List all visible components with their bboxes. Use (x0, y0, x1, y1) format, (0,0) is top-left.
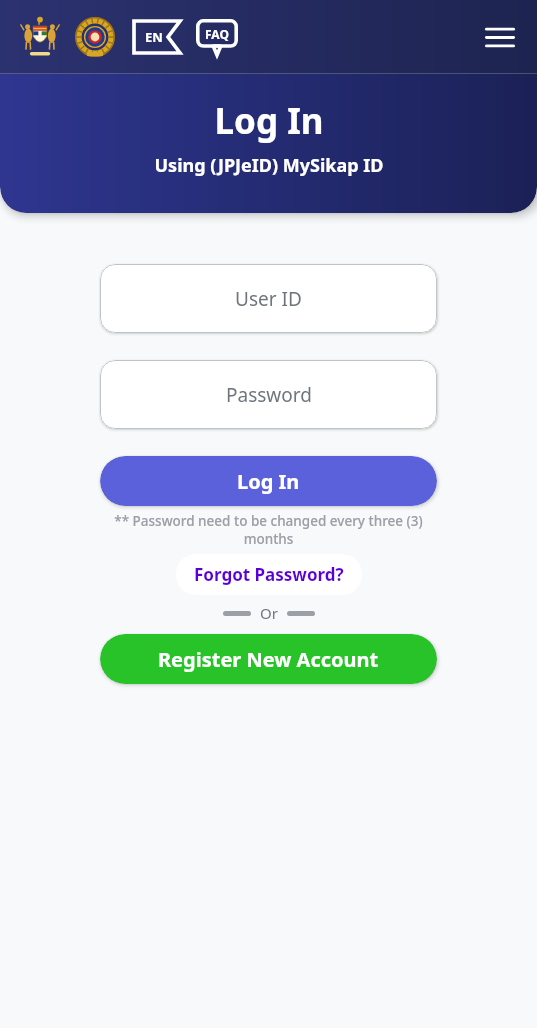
staticText: Password (226, 382, 312, 408)
staticText: User ID (235, 286, 302, 312)
staticText: FAQ (205, 26, 229, 42)
button[interactable]: Register New Account (100, 634, 437, 684)
staticText: EN (145, 28, 163, 46)
button[interactable]: FAQ (193, 16, 241, 58)
staticText: Register New Account (158, 646, 379, 673)
button[interactable]: Forgot Password? (176, 554, 362, 595)
button[interactable]: Password (100, 360, 437, 429)
button[interactable]: Menu (477, 14, 523, 60)
button[interactable]: Jata Negara (16, 14, 64, 60)
staticText: Log In (214, 97, 324, 145)
button[interactable]: Language EN (131, 17, 183, 57)
staticText: ** Password need to be changed every thr… (100, 512, 437, 548)
staticText: Forgot Password? (194, 563, 344, 586)
staticText: Log In (237, 468, 300, 495)
staticText: Or (260, 603, 278, 623)
staticText: Using (JPJeID) MySikap ID (154, 153, 384, 178)
button[interactable]: JPJ logo (73, 15, 117, 59)
button[interactable]: User ID (100, 264, 437, 333)
button[interactable]: Log In (100, 456, 437, 506)
